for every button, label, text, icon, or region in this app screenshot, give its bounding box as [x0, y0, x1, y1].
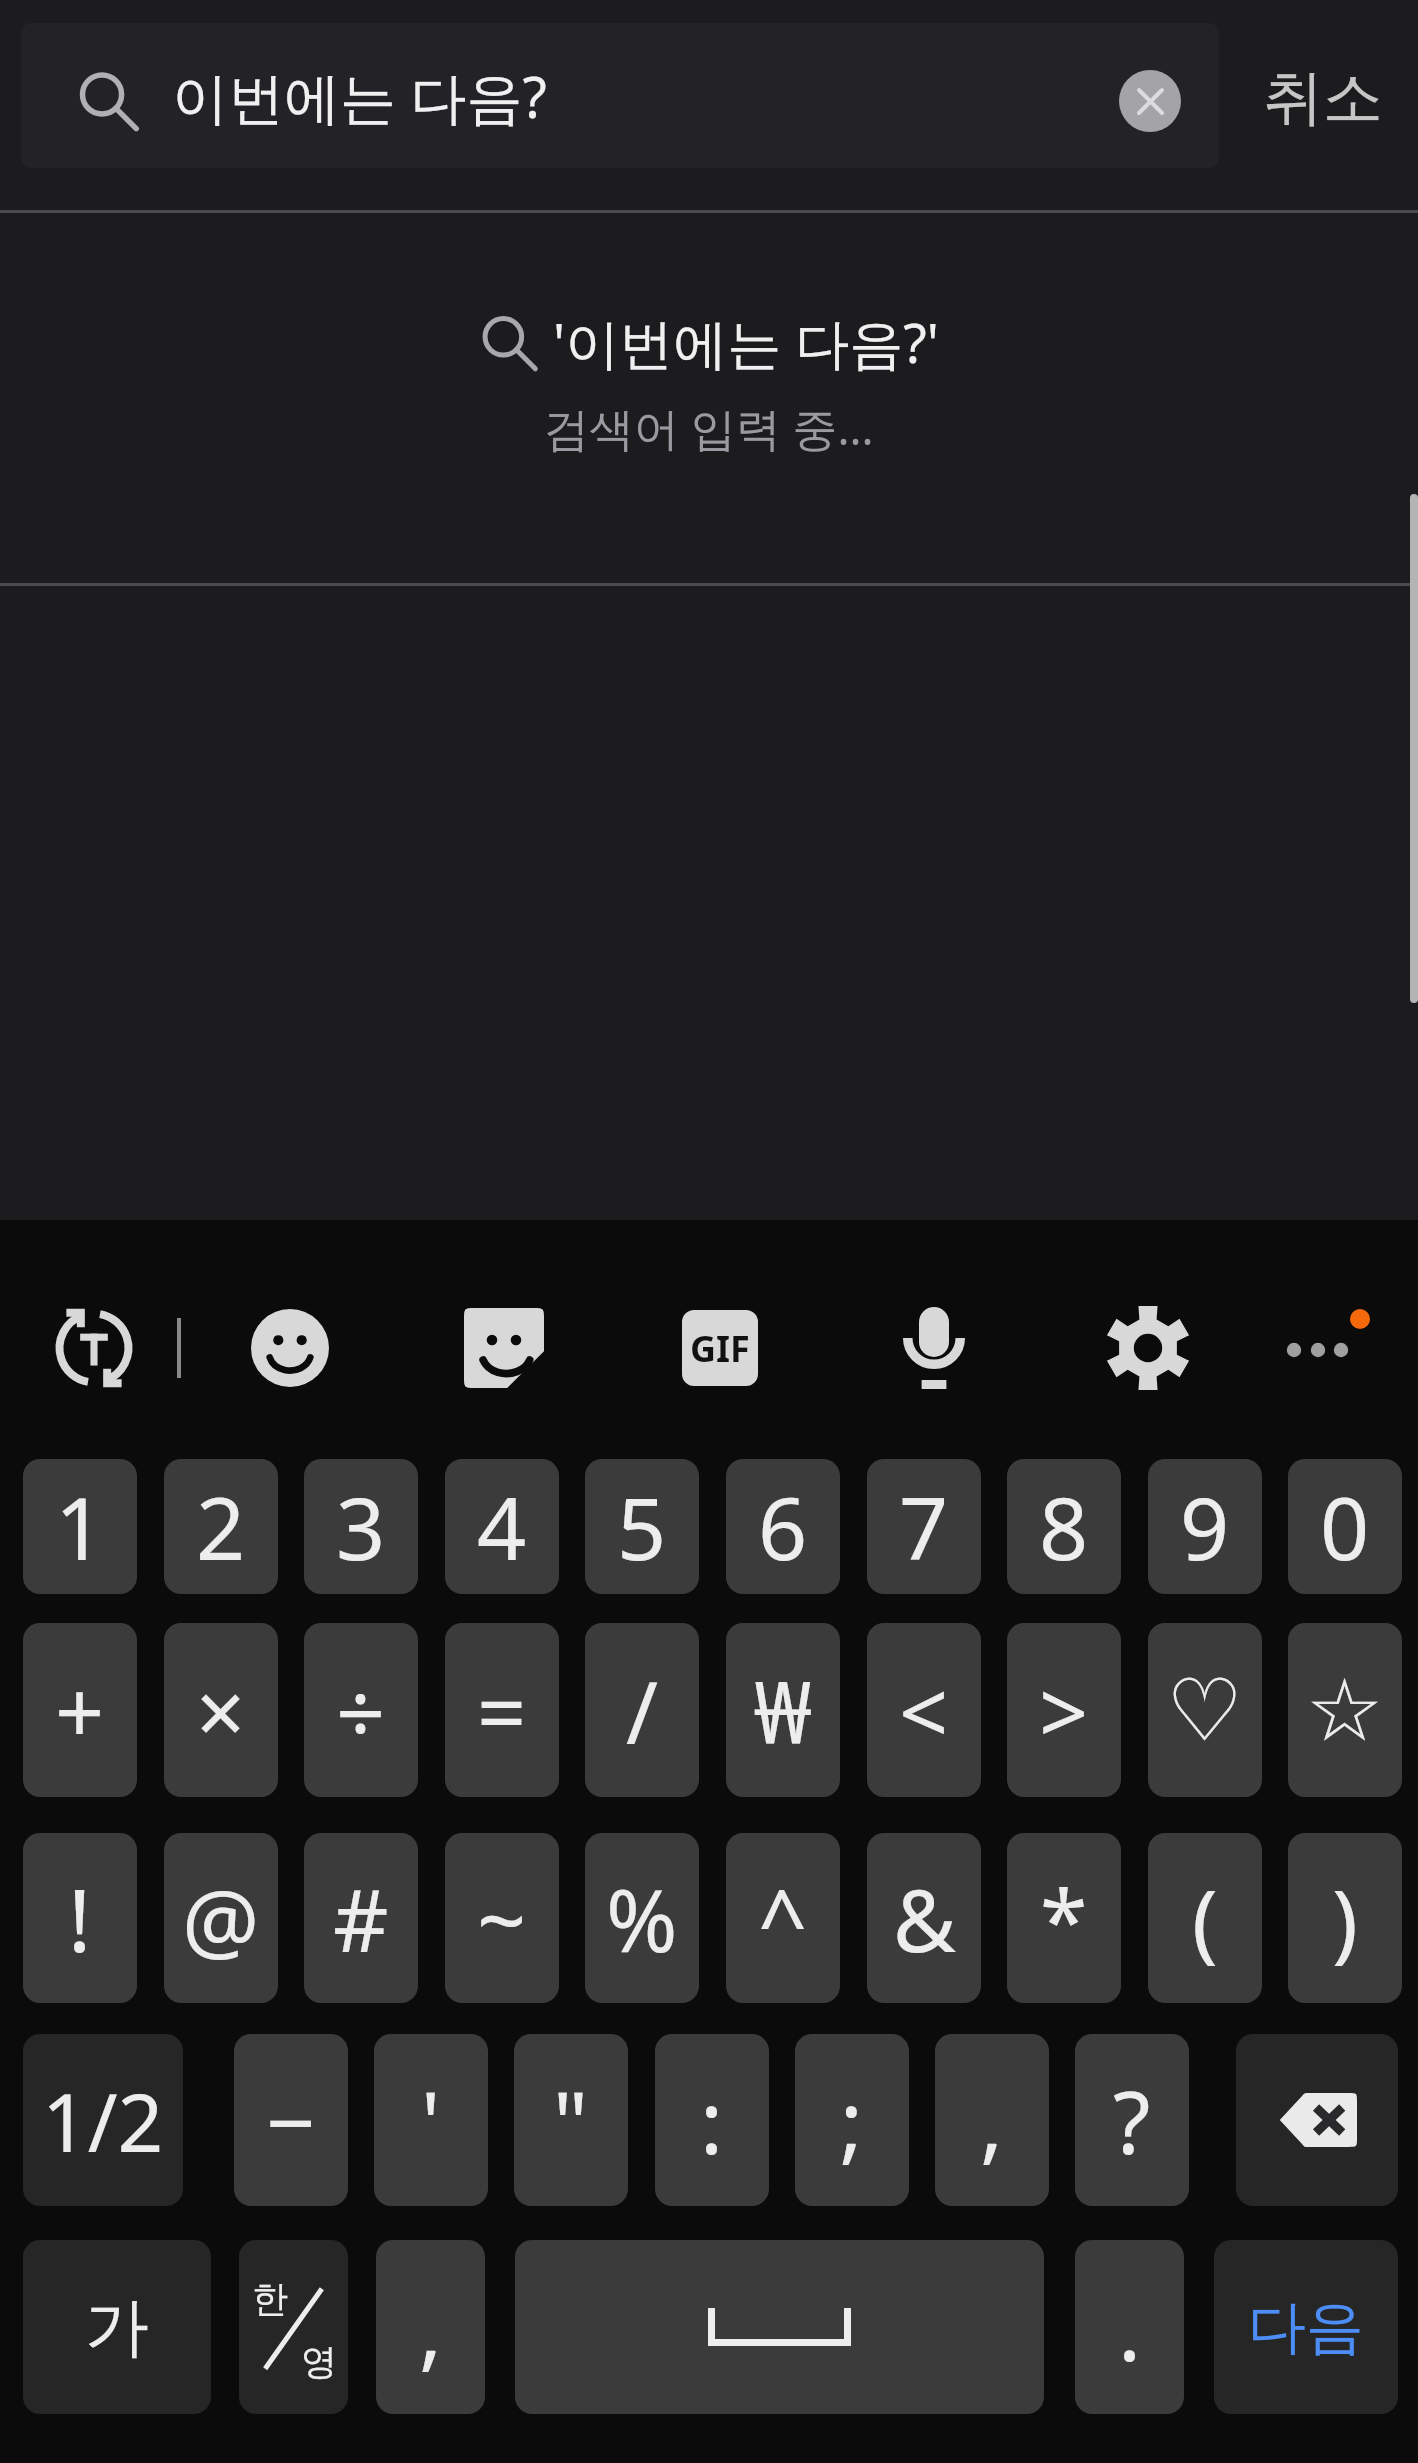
button[interactable]: Settings [1092, 1292, 1204, 1404]
button[interactable]: , [376, 2240, 485, 2414]
staticText: > [1039, 1652, 1089, 1769]
staticText: ♡ [1166, 1660, 1244, 1760]
button[interactable]: 다음 [1214, 2240, 1398, 2414]
staticText: 가 [85, 2287, 149, 2368]
button[interactable]: 가 [23, 2240, 211, 2414]
staticText: % [606, 1860, 678, 1977]
button[interactable]: ☆ [1288, 1623, 1402, 1797]
staticText: * [1040, 1860, 1088, 1977]
button[interactable]: ? [1075, 2034, 1189, 2206]
staticText: ! [68, 1860, 92, 1977]
button[interactable]: Clear text [1119, 70, 1181, 132]
button[interactable]: 0 [1288, 1459, 1402, 1594]
button[interactable]: Translate [38, 1292, 150, 1404]
button[interactable]: * [1007, 1833, 1121, 2003]
staticText: 1/2 [42, 2066, 164, 2175]
button[interactable]: ^ [726, 1833, 840, 2003]
staticText: ) [1332, 1860, 1358, 1977]
staticText: = [477, 1652, 527, 1769]
button[interactable]: = [445, 1623, 559, 1797]
button[interactable]: More options [1266, 1292, 1378, 1404]
button[interactable]: , [935, 2034, 1049, 2206]
staticText: ( [1192, 1860, 1218, 1977]
staticText: 다음 [1248, 2291, 1364, 2364]
button[interactable]: 8 [1007, 1459, 1121, 1594]
staticText: 1 [55, 1468, 105, 1585]
button[interactable]: / [585, 1623, 699, 1797]
button[interactable]: GIF [664, 1292, 776, 1404]
button[interactable]: 5 [585, 1459, 699, 1594]
staticText: 9 [1180, 1468, 1230, 1585]
staticText: ^ [758, 1860, 808, 1977]
staticText: , [980, 2062, 1004, 2179]
button[interactable]: 4 [445, 1459, 559, 1594]
button[interactable]: Emoji [234, 1292, 346, 1404]
button[interactable]: & [867, 1833, 981, 2003]
button[interactable]: 이번에는 다음? [21, 23, 1219, 168]
button[interactable]: ♡ [1148, 1623, 1262, 1797]
staticText: @ [182, 1860, 260, 1977]
staticText: 이번에는 다음? [172, 58, 547, 134]
staticText: '이번에는 다음?' [553, 305, 939, 379]
button[interactable]: : [655, 2034, 769, 2206]
button[interactable]: Space [515, 2240, 1044, 2414]
staticText: ☆ [1306, 1660, 1384, 1760]
button[interactable]: ) [1288, 1833, 1402, 2003]
staticText: 6 [758, 1468, 808, 1585]
button[interactable]: − [234, 2034, 348, 2206]
staticText: 4 [477, 1468, 527, 1585]
button[interactable]: % [585, 1833, 699, 2003]
button[interactable]: # [304, 1833, 418, 2003]
button[interactable]: ÷ [304, 1623, 418, 1797]
button[interactable]: ' [374, 2034, 488, 2206]
button[interactable]: 6 [726, 1459, 840, 1594]
button[interactable]: Backspace [1236, 2034, 1398, 2206]
staticText: 8 [1039, 1468, 1089, 1585]
staticText: . [1118, 2269, 1142, 2386]
staticText: ' [421, 2062, 441, 2179]
button[interactable]: @ [164, 1833, 278, 2003]
staticText: 취소 [1263, 60, 1383, 136]
staticText: 한 [252, 2276, 288, 2321]
button[interactable]: " [514, 2034, 628, 2206]
button[interactable]: 7 [867, 1459, 981, 1594]
button[interactable]: 1 [23, 1459, 137, 1594]
button[interactable]: × [164, 1623, 278, 1797]
staticText: : [700, 2062, 724, 2179]
staticText: 2 [196, 1468, 246, 1585]
button[interactable]: ! [23, 1833, 137, 2003]
staticText: ; [840, 2062, 864, 2179]
staticText: # [333, 1860, 389, 1977]
button[interactable]: + [23, 1623, 137, 1797]
staticText: − [266, 2062, 316, 2179]
button[interactable]: ~ [445, 1833, 559, 2003]
staticText: × [196, 1652, 246, 1769]
staticText: 3 [336, 1468, 386, 1585]
button[interactable]: ; [795, 2034, 909, 2206]
button[interactable]: Korean English toggle [239, 2240, 348, 2414]
staticText: ? [1113, 2062, 1151, 2179]
staticText: + [55, 1652, 105, 1769]
staticText: / [626, 1652, 658, 1769]
button[interactable]: ( [1148, 1833, 1262, 2003]
staticText: " [553, 2062, 589, 2179]
button[interactable]: < [867, 1623, 981, 1797]
staticText: 7 [899, 1468, 949, 1585]
staticText: 영 [301, 2339, 337, 2384]
button[interactable]: 3 [304, 1459, 418, 1594]
button[interactable]: Stickers [448, 1292, 560, 1404]
staticText: 5 [617, 1468, 667, 1585]
staticText: GIF [690, 1324, 750, 1373]
button[interactable]: Voice input [878, 1292, 990, 1404]
button[interactable]: 9 [1148, 1459, 1262, 1594]
staticText: 검색어 입력 중... [544, 397, 874, 458]
button[interactable]: 2 [164, 1459, 278, 1594]
button[interactable]: 1/2 [23, 2034, 183, 2206]
button[interactable]: > [1007, 1623, 1121, 1797]
staticText: ~ [477, 1860, 527, 1977]
staticText: ₩ [754, 1652, 812, 1769]
button[interactable]: . [1075, 2240, 1184, 2414]
button[interactable]: ₩ [726, 1623, 840, 1797]
staticText: < [899, 1652, 949, 1769]
button[interactable]: 취소 [1250, 35, 1395, 160]
